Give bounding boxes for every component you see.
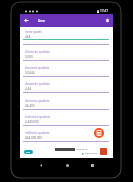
button[interactable]: Delete	[102, 15, 112, 25]
button[interactable]: Home	[62, 160, 72, 170]
button[interactable]: decametro quadrato	[20, 76, 113, 92]
staticText: 444	[25, 35, 31, 39]
button[interactable]: metro quadro	[20, 28, 113, 44]
staticText: Shopping	[76, 147, 88, 150]
button[interactable]: apri	[24, 150, 33, 154]
staticText: 0,0444	[25, 71, 35, 75]
staticText: 4.440.000	[25, 120, 39, 124]
staticText: apri	[26, 151, 31, 154]
button[interactable]: Recents	[87, 160, 97, 170]
staticText: metro quadro	[25, 30, 42, 34]
staticText: chilometro quadrato	[25, 50, 51, 54]
staticText: 44.400	[25, 104, 35, 108]
staticText: Google Play	[85, 152, 98, 155]
button[interactable]: ettometro quadrato	[20, 60, 113, 76]
button[interactable]: Back	[21, 15, 31, 25]
button[interactable]: millimetro quadrato	[20, 125, 113, 141]
staticText: 444.000.000	[25, 136, 43, 140]
staticText: centimetro quadrato	[25, 115, 51, 119]
staticText: decametro quadrato	[25, 82, 51, 86]
staticText: Area	[38, 19, 45, 23]
button[interactable]: chilometro quadrato	[20, 44, 113, 60]
button[interactable]: decimetro quadrato	[20, 93, 113, 109]
staticText: 0,000	[25, 55, 33, 59]
button[interactable]: centimetro quadrato	[20, 109, 113, 125]
button[interactable]: Back	[36, 160, 46, 170]
staticText: 4,44	[25, 87, 31, 91]
staticText: decimetro quadrato	[25, 99, 50, 103]
staticText: millimetro quadrato	[25, 131, 50, 135]
staticText: ettometro quadrato	[25, 66, 50, 70]
button[interactable]: Calculator	[94, 128, 104, 138]
staticText: 17:47	[100, 9, 108, 13]
